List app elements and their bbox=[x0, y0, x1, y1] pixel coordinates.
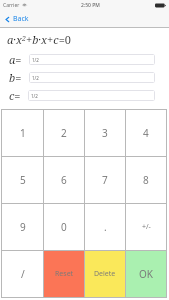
staticText: 1/2 bbox=[32, 57, 39, 63]
button[interactable]: Delete bbox=[85, 251, 125, 297]
staticText: Delete bbox=[94, 269, 116, 279]
staticText: Reset bbox=[55, 269, 74, 279]
staticText: Carrier bbox=[3, 2, 20, 9]
button[interactable]: 1/2 bbox=[28, 90, 155, 101]
button[interactable]: 0 bbox=[44, 204, 84, 250]
button[interactable]: Reset bbox=[44, 251, 84, 297]
staticText: a·x2+b·x+c=0 bbox=[7, 32, 71, 47]
button[interactable]: 4 bbox=[126, 110, 166, 156]
staticText: Back bbox=[13, 14, 29, 24]
staticText: 9 bbox=[20, 220, 26, 234]
button[interactable]: +/- bbox=[126, 204, 166, 250]
button[interactable]: 5 bbox=[2, 157, 43, 203]
button[interactable]: OK bbox=[126, 251, 166, 297]
button[interactable]: 2 bbox=[44, 110, 84, 156]
staticText: 1/2 bbox=[32, 75, 39, 81]
staticText: 6 bbox=[61, 173, 67, 187]
staticText: 2 bbox=[61, 126, 67, 140]
staticText: 4 bbox=[143, 126, 149, 140]
button[interactable]: 9 bbox=[2, 204, 43, 250]
staticText: 1 bbox=[20, 126, 26, 140]
staticText: OK bbox=[139, 267, 153, 281]
button[interactable]: 8 bbox=[126, 157, 166, 203]
button[interactable]: 1/2 bbox=[29, 54, 155, 65]
staticText: +/- bbox=[142, 222, 151, 232]
staticText: a= bbox=[9, 52, 22, 67]
button[interactable]: 1/2 bbox=[29, 72, 155, 83]
staticText: 3 bbox=[102, 126, 108, 140]
button[interactable]: 6 bbox=[44, 157, 84, 203]
button[interactable]: 7 bbox=[85, 157, 125, 203]
staticText: b= bbox=[9, 70, 22, 85]
staticText: 7 bbox=[102, 173, 108, 187]
button[interactable]: Back bbox=[0, 12, 37, 26]
button[interactable]: / bbox=[2, 251, 43, 297]
staticText: 1/2 bbox=[31, 93, 38, 99]
staticText: c= bbox=[9, 88, 21, 103]
staticText: / bbox=[21, 267, 25, 281]
staticText: 8 bbox=[143, 173, 149, 187]
button[interactable]: 1 bbox=[2, 110, 43, 156]
staticText: 5 bbox=[20, 173, 26, 187]
staticText: 2:50 PM bbox=[81, 2, 100, 9]
button[interactable]: 3 bbox=[85, 110, 125, 156]
staticText: . bbox=[104, 220, 107, 234]
staticText: 0 bbox=[61, 220, 67, 234]
